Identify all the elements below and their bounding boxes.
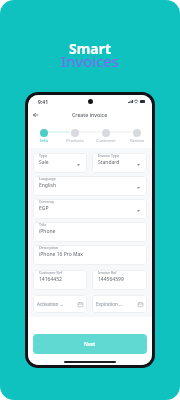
- button[interactable]: Expiration ...: [92, 295, 147, 313]
- staticText: Products: [66, 138, 84, 144]
- button[interactable]: Back: [30, 110, 40, 119]
- staticText: Invoice Ref: [98, 270, 117, 275]
- staticText: Expiration ...: [96, 301, 123, 307]
- staticText: English: [39, 182, 57, 189]
- button[interactable]: Customer: [90, 122, 121, 144]
- staticText: Sale: [39, 159, 49, 166]
- button[interactable]: Type: [33, 153, 87, 173]
- staticText: 144564599: [98, 276, 124, 283]
- button[interactable]: Invoice Type: [92, 153, 147, 173]
- button[interactable]: Products: [59, 122, 90, 144]
- button[interactable]: Description: [33, 245, 147, 265]
- button[interactable]: Review: [121, 122, 152, 144]
- staticText: Info: [40, 138, 48, 144]
- staticText: Customer: [96, 138, 116, 144]
- staticText: Next: [84, 341, 96, 348]
- button[interactable]: Customer Ref: [33, 270, 87, 290]
- staticText: iPhone: [39, 228, 56, 235]
- staticText: Standard: [98, 159, 120, 166]
- staticText: Smart: [69, 39, 112, 58]
- button[interactable]: Activation ...: [33, 295, 87, 313]
- staticText: Currency: [39, 199, 55, 204]
- staticText: iPhone 16 Pro Max: [39, 251, 83, 258]
- button[interactable]: Invoice Ref: [92, 270, 147, 290]
- staticText: Create invoice: [72, 111, 108, 118]
- button[interactable]: Language: [33, 176, 147, 196]
- staticText: 14164452: [39, 276, 62, 283]
- staticText: Type: [39, 153, 47, 158]
- staticText: Activation ...: [37, 301, 64, 307]
- staticText: EGP: [39, 205, 49, 212]
- button[interactable]: Next: [33, 334, 147, 354]
- staticText: Invoice Type: [98, 153, 120, 158]
- button[interactable]: Info: [28, 122, 59, 144]
- staticText: Description: [39, 245, 59, 250]
- button[interactable]: Currency: [33, 199, 147, 219]
- staticText: Invoices: [61, 51, 119, 71]
- staticText: Review: [130, 138, 144, 144]
- staticText: Title: [39, 222, 47, 227]
- staticText: 9:41: [38, 99, 48, 106]
- staticText: Language: [39, 176, 56, 181]
- staticText: Customer Ref: [39, 270, 62, 275]
- button[interactable]: Title: [33, 222, 147, 242]
